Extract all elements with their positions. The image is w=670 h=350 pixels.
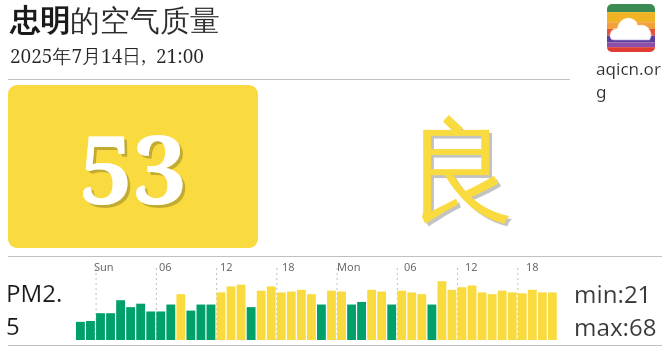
staticText: min:21 <box>574 277 652 310</box>
staticText: 53 <box>79 102 187 231</box>
staticText: 12 <box>465 259 478 274</box>
staticText: Sun <box>94 259 114 274</box>
staticText: 06 <box>404 259 417 274</box>
staticText: 53 <box>82 105 190 234</box>
staticText: 2025年7月14日, 21:00 <box>10 43 204 69</box>
button[interactable]: min:21 <box>574 277 657 343</box>
staticText: 忠明 <box>10 2 70 40</box>
staticText: 18 <box>526 259 539 274</box>
button[interactable]: PM2.5 <box>6 276 76 350</box>
staticText: aqicn.org <box>596 57 666 103</box>
staticText: 12 <box>220 259 233 274</box>
staticText: 良 <box>408 105 520 245</box>
staticText: 的空气质量 <box>70 2 220 40</box>
staticText: 良 <box>405 102 517 242</box>
staticText: max:68 <box>574 310 657 343</box>
staticText: Mon <box>337 259 361 274</box>
staticText: AQI <box>6 342 48 350</box>
staticText: 06 <box>159 259 172 274</box>
button[interactable]: 53 <box>8 85 258 248</box>
button[interactable]: aqicn.org <box>607 4 655 52</box>
staticText: PM2.5 <box>6 276 76 342</box>
staticText: 18 <box>282 259 295 274</box>
